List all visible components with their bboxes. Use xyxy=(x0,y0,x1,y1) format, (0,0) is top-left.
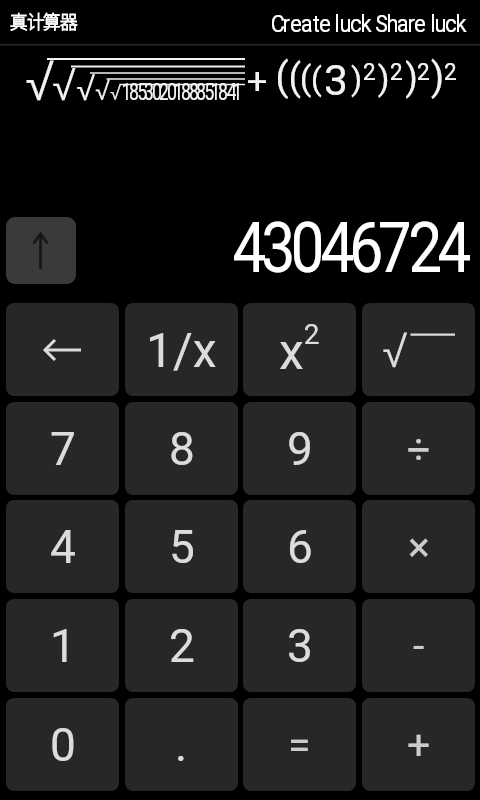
button[interactable] xyxy=(362,303,475,396)
staticText: 9 xyxy=(287,422,313,476)
button[interactable]: = xyxy=(243,698,356,791)
staticText: × xyxy=(408,523,430,571)
staticText: 4 xyxy=(50,520,76,574)
staticText: x2 xyxy=(279,318,320,381)
staticText: - xyxy=(413,622,425,670)
staticText: 6 xyxy=(287,520,313,574)
button[interactable]: 9 xyxy=(243,402,356,495)
button[interactable]: 4 xyxy=(6,500,119,593)
staticText: 7 xyxy=(50,422,76,476)
button[interactable]: - xyxy=(362,599,475,692)
button[interactable]: 3 xyxy=(243,599,356,692)
button[interactable]: 1 xyxy=(6,599,119,692)
button[interactable]: x2 xyxy=(243,303,356,396)
button[interactable]: ÷ xyxy=(362,402,475,495)
button[interactable]: 1/x xyxy=(125,303,238,396)
button[interactable] xyxy=(260,0,470,44)
button[interactable]: . xyxy=(125,698,238,791)
button[interactable]: + xyxy=(362,698,475,791)
button[interactable]: 0 xyxy=(6,698,119,791)
button[interactable]: 5 xyxy=(125,500,238,593)
button[interactable]: 6 xyxy=(243,500,356,593)
staticText: ÷ xyxy=(407,425,431,473)
button[interactable] xyxy=(6,303,119,396)
button[interactable]: × xyxy=(362,500,475,593)
button[interactable] xyxy=(6,217,76,284)
button[interactable] xyxy=(0,0,120,44)
button[interactable]: 7 xyxy=(6,402,119,495)
staticText: 0 xyxy=(50,718,76,772)
button[interactable]: 8 xyxy=(125,402,238,495)
staticText: 2 xyxy=(169,619,195,673)
staticText: 8 xyxy=(169,422,195,476)
staticText: + xyxy=(407,721,431,769)
staticText: 5 xyxy=(169,520,195,574)
staticText: 1 xyxy=(50,619,76,673)
staticText: = xyxy=(288,721,311,769)
staticText: 1/x xyxy=(146,322,217,378)
button[interactable]: 2 xyxy=(125,599,238,692)
staticText: 3 xyxy=(287,619,313,673)
staticText: . xyxy=(175,718,188,772)
